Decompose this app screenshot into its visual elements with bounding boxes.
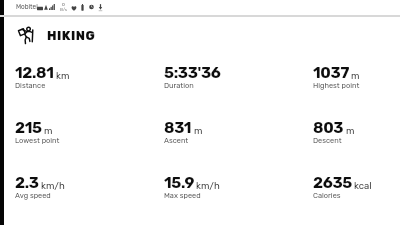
staticText: Avg speed (15, 191, 51, 200)
staticText: 15.9 (164, 174, 194, 192)
staticText: 215 (15, 119, 42, 137)
staticText: 831 (164, 119, 192, 137)
staticText: 2635 (313, 174, 352, 192)
staticText: kcal (354, 180, 372, 191)
staticText: Highest point (313, 81, 360, 90)
button[interactable]: 2.3 (15, 174, 65, 201)
button[interactable]: 12.81 (15, 64, 70, 91)
staticText: 2.3 (15, 174, 39, 192)
staticText: HIKING (47, 28, 96, 43)
staticText: m (346, 125, 355, 136)
other: Hiking activity (18, 27, 35, 45)
button[interactable]: 5:33'36 (164, 64, 221, 91)
staticText: Duration (164, 81, 194, 90)
staticText: 5:33'36 (164, 64, 221, 82)
staticText: km/h (196, 180, 220, 191)
button[interactable]: 831 (164, 119, 203, 146)
staticText: m (351, 70, 360, 81)
staticText: 12.81 (15, 64, 54, 82)
button[interactable]: 803 (313, 119, 355, 146)
staticText: Distance (15, 81, 46, 90)
staticText: Ascent (164, 136, 189, 145)
staticText: 1037 (313, 64, 349, 82)
staticText: km/h (41, 180, 65, 191)
button[interactable]: 1037 (313, 64, 360, 91)
staticText: Calories (313, 191, 341, 200)
button[interactable]: Hiking activity (18, 24, 400, 46)
staticText: km (56, 70, 70, 81)
button[interactable]: 15.9 (164, 174, 220, 201)
staticText: Max speed (164, 191, 201, 200)
staticText: Descent (313, 136, 342, 145)
staticText: 0 (62, 2, 65, 7)
button[interactable]: 215 (15, 119, 60, 146)
button[interactable]: 2635 (313, 174, 372, 201)
staticText: m (194, 125, 203, 136)
staticText: m (44, 125, 53, 136)
staticText: B/s (60, 7, 68, 12)
staticText: Lowest point (15, 136, 60, 145)
staticText: Mobitel (16, 3, 38, 11)
staticText: 803 (313, 119, 344, 137)
